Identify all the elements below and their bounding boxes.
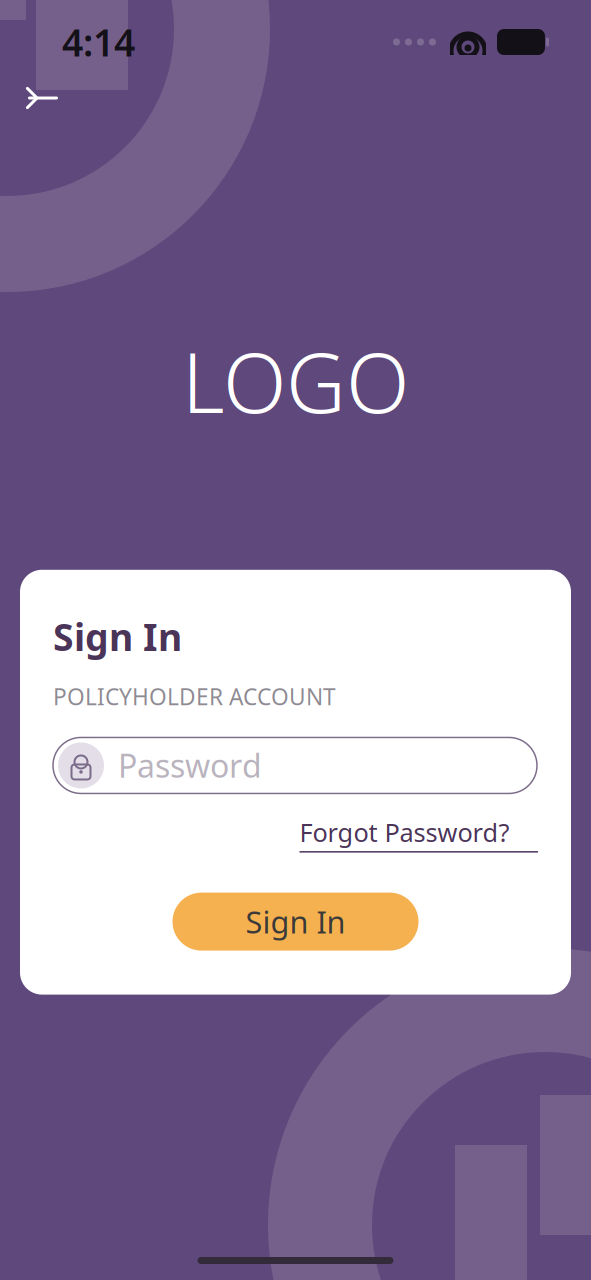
staticText: 4:14 xyxy=(62,17,135,67)
button[interactable]: Sign In xyxy=(172,893,418,951)
staticText: POLICYHOLDER ACCOUNT xyxy=(53,681,336,711)
staticText: LOGO xyxy=(182,326,409,436)
staticText: Sign In xyxy=(53,612,182,661)
staticText: Password xyxy=(118,744,262,787)
button[interactable]: Forgot Password? xyxy=(299,813,538,855)
staticText: Forgot Password? xyxy=(299,815,509,849)
button[interactable]: Back xyxy=(12,72,72,124)
staticText: Sign In xyxy=(245,901,345,942)
